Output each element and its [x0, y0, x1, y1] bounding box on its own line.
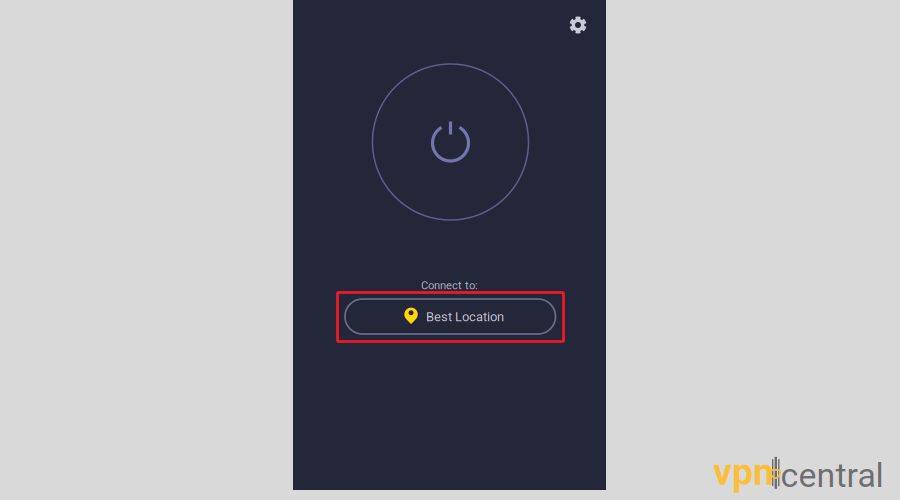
- button[interactable]: Settings: [560, 7, 596, 43]
- staticText: vpn: [713, 450, 774, 494]
- staticText: Best Location: [426, 309, 504, 324]
- button[interactable]: Best Location: [345, 299, 555, 334]
- staticText: Connect to:: [421, 279, 478, 292]
- button[interactable]: Connect: [370, 62, 530, 222]
- staticText: central: [780, 456, 883, 495]
